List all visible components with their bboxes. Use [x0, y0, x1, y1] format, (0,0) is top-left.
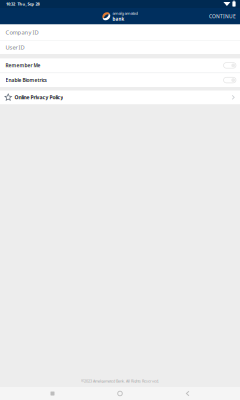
button[interactable]: Back	[172, 387, 202, 400]
button[interactable]: User ID	[0, 41, 240, 54]
staticText: bank	[112, 16, 124, 22]
staticText: 10:32	[6, 1, 15, 7]
button[interactable]: Remember Me	[0, 58, 240, 72]
button[interactable]: Online Privacy Policy	[0, 90, 240, 104]
button[interactable]: Company ID	[0, 24, 240, 40]
button[interactable]: CONTINUE	[203, 8, 240, 24]
staticText: CONTINUE	[209, 13, 236, 20]
staticText: Remember Me	[5, 62, 40, 69]
button[interactable]: Recent apps	[37, 387, 67, 400]
staticText: User ID	[5, 43, 24, 51]
staticText: ©2023 Amalgamated Bank. All Rights Reser…	[81, 378, 159, 384]
button[interactable]: Home	[105, 387, 135, 400]
staticText: Company ID	[5, 28, 38, 36]
staticText: Enable Biometrics	[5, 77, 46, 83]
button[interactable]: Enable Biometrics	[0, 73, 240, 87]
staticText: Thu, Sep 28	[17, 1, 39, 7]
staticText: Online Privacy Policy	[14, 94, 63, 101]
staticText: amalgamated	[112, 10, 138, 16]
